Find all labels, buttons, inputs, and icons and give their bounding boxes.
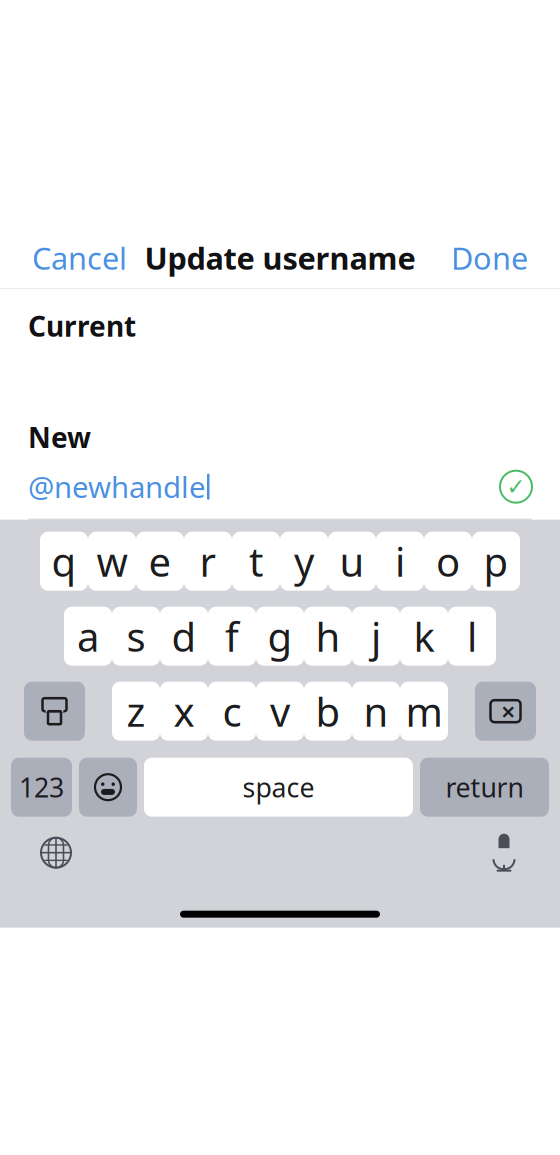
button[interactable]: l: [448, 607, 496, 666]
button[interactable]: w: [88, 532, 136, 591]
staticText: w: [96, 535, 127, 588]
staticText: Done: [451, 237, 528, 278]
staticText: y: [294, 535, 314, 588]
button[interactable]: e: [136, 532, 184, 591]
staticText: Update username: [144, 237, 415, 278]
button[interactable]: Cancel: [18, 227, 141, 288]
staticText: e: [148, 535, 171, 588]
staticText: i: [395, 535, 405, 588]
button[interactable]: n: [352, 682, 400, 741]
staticText: a: [77, 610, 99, 663]
staticText: f: [225, 610, 239, 663]
button[interactable]: y: [280, 532, 328, 591]
staticText: d: [171, 610, 196, 663]
staticText: p: [483, 535, 508, 588]
staticText: return: [445, 769, 523, 805]
button[interactable]: v: [256, 682, 304, 741]
button[interactable]: g: [256, 607, 304, 666]
button[interactable]: return: [420, 758, 549, 817]
staticText: space: [242, 769, 314, 805]
button[interactable]: Delete: [475, 682, 536, 741]
staticText: @newhandle: [28, 467, 206, 506]
staticText: j: [371, 610, 381, 663]
staticText: c: [222, 685, 241, 738]
button[interactable]: k: [400, 607, 448, 666]
button[interactable]: u: [328, 532, 376, 591]
button[interactable]: j: [352, 607, 400, 666]
button[interactable]: p: [472, 532, 520, 591]
button[interactable]: 123: [11, 758, 72, 817]
button[interactable]: Emoji: [79, 758, 137, 817]
button[interactable]: b: [304, 682, 352, 741]
staticText: g: [267, 610, 292, 663]
staticText: n: [363, 685, 388, 738]
button[interactable]: Next keyboard: [28, 829, 84, 877]
staticText: h: [315, 610, 340, 663]
staticText: Cancel: [32, 237, 127, 278]
staticText: ×: [501, 694, 515, 728]
button[interactable]: m: [400, 682, 448, 741]
button[interactable]: Dictate: [476, 829, 532, 877]
staticText: x: [173, 685, 194, 738]
button[interactable]: r: [184, 532, 232, 591]
button[interactable]: h: [304, 607, 352, 666]
button[interactable]: f: [208, 607, 256, 666]
button[interactable]: i: [376, 532, 424, 591]
button[interactable]: s: [112, 607, 160, 666]
button[interactable]: z: [112, 682, 160, 741]
staticText: m: [405, 685, 442, 738]
button[interactable]: x: [160, 682, 208, 741]
staticText: ✓: [506, 474, 525, 499]
button[interactable]: Shift: [24, 682, 85, 741]
button[interactable]: q: [40, 532, 88, 591]
staticText: Current: [28, 307, 136, 344]
staticText: o: [436, 535, 460, 588]
staticText: 123: [19, 769, 64, 805]
staticText: b: [315, 685, 340, 738]
staticText: q: [51, 535, 76, 588]
staticText: t: [249, 535, 263, 588]
button[interactable]: space: [144, 758, 413, 817]
button[interactable]: d: [160, 607, 208, 666]
staticText: k: [413, 610, 434, 663]
staticText: New: [28, 418, 91, 456]
button[interactable]: o: [424, 532, 472, 591]
staticText: r: [199, 535, 216, 588]
button[interactable]: Done: [437, 227, 542, 288]
staticText: v: [270, 685, 290, 738]
button[interactable]: t: [232, 532, 280, 591]
staticText: l: [467, 610, 477, 663]
button[interactable]: a: [64, 607, 112, 666]
staticText: u: [339, 535, 364, 588]
staticText: s: [126, 610, 145, 663]
button[interactable]: c: [208, 682, 256, 741]
staticText: z: [126, 685, 145, 738]
